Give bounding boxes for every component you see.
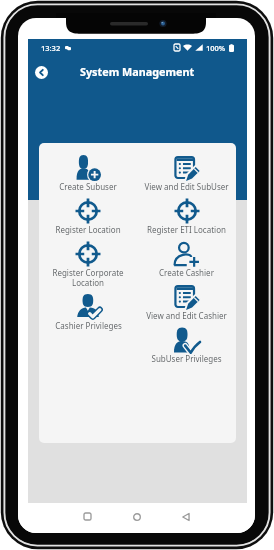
button[interactable]: View and Edit Cashier [137,284,236,327]
staticText: View and Edit Cashier [146,310,227,321]
button[interactable]: Back [176,507,195,526]
button[interactable]: Back [31,62,51,82]
button[interactable]: Register Location [39,198,137,241]
staticText: Cashier Privileges [55,320,122,331]
button[interactable]: Create Cashier [137,241,236,284]
staticText: System Management [80,64,195,79]
button[interactable]: Home [127,507,146,526]
staticText: SubUser Privileges [151,353,222,364]
staticText: View and Edit SubUser [144,181,229,192]
staticText: Register Location [55,224,121,235]
button[interactable]: Create Subuser [39,155,137,198]
staticText: Create Cashier [159,267,214,278]
button[interactable]: SubUser Privileges [137,327,236,370]
staticText: 13:32 [41,43,61,53]
staticText: Create Subuser [59,181,117,192]
staticText: 100% [206,43,226,53]
button[interactable]: Register ETI Location [137,198,236,241]
button[interactable]: View and Edit SubUser [137,155,236,198]
button[interactable]: Cashier Privileges [39,294,137,337]
staticText: Register Corporate Location [42,267,134,288]
staticText: Register ETI Location [147,224,226,235]
button[interactable]: Register Corporate Location [39,241,137,294]
button[interactable]: Recents [78,507,97,526]
